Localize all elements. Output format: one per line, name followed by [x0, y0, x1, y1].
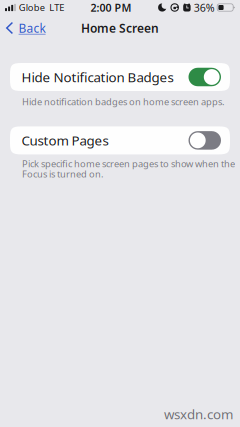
button[interactable]: Back — [0, 16, 52, 40]
staticText: 36% — [194, 0, 215, 15]
staticText: Custom Pages — [21, 131, 108, 149]
button[interactable]: Custom Pages — [10, 126, 230, 154]
staticText: wsxdn.com — [164, 405, 233, 423]
staticText: Hide notification badges on home screen … — [22, 95, 225, 108]
staticText: Home Screen — [81, 20, 159, 36]
staticText: Globe — [19, 1, 45, 14]
button[interactable]: Hide Notification Badges — [10, 63, 230, 91]
staticText: Hide Notification Badges — [21, 68, 173, 86]
staticText: Back — [19, 20, 46, 36]
staticText: 2:00 PM — [91, 0, 132, 15]
staticText: Pick specific home screen pages to show … — [22, 157, 235, 180]
staticText: LTE — [49, 1, 64, 14]
